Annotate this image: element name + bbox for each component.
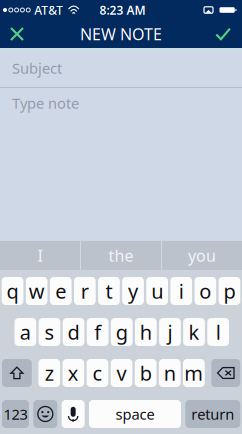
staticText: the: [108, 245, 133, 266]
staticText: NEW NOTE: [80, 23, 162, 45]
button[interactable]: g: [111, 318, 133, 346]
button[interactable]: c: [87, 359, 108, 387]
button[interactable]: k: [183, 318, 205, 346]
staticText: a: [20, 319, 31, 345]
button[interactable]: a: [14, 318, 36, 346]
button[interactable]: Shift: [2, 359, 32, 387]
staticText: n: [164, 360, 176, 386]
button[interactable]: the: [81, 241, 161, 270]
button[interactable]: t: [98, 277, 120, 305]
staticText: x: [68, 360, 79, 386]
button[interactable]: r: [74, 277, 96, 305]
staticText: c: [92, 360, 102, 386]
button[interactable]: m: [183, 359, 205, 387]
staticText: w: [29, 278, 45, 304]
staticText: r: [81, 278, 89, 304]
button[interactable]: e: [50, 277, 72, 305]
button[interactable]: p: [219, 277, 240, 305]
staticText: l: [216, 319, 221, 345]
button[interactable]: o: [194, 277, 216, 305]
button[interactable]: h: [135, 318, 157, 346]
staticText: b: [140, 360, 152, 386]
button[interactable]: q: [2, 277, 23, 305]
button[interactable]: l: [207, 318, 229, 346]
staticText: p: [223, 278, 235, 304]
button[interactable]: n: [159, 359, 181, 387]
staticText: f: [94, 319, 101, 345]
button[interactable]: i: [170, 277, 192, 305]
staticText: q: [7, 278, 19, 304]
staticText: k: [189, 319, 200, 345]
staticText: o: [199, 278, 211, 304]
button[interactable]: return: [185, 400, 240, 428]
staticText: you: [188, 245, 216, 266]
staticText: 123: [3, 404, 27, 424]
staticText: s: [44, 319, 54, 345]
staticText: y: [128, 278, 138, 304]
staticText: space: [115, 404, 154, 424]
button[interactable]: j: [159, 318, 181, 346]
button[interactable]: 123: [2, 400, 29, 428]
staticText: t: [105, 278, 112, 304]
button[interactable]: s: [39, 318, 60, 346]
staticText: h: [140, 319, 152, 345]
staticText: m: [184, 360, 203, 386]
button[interactable]: d: [63, 318, 84, 346]
button[interactable]: z: [38, 359, 60, 387]
button[interactable]: w: [26, 277, 47, 305]
staticText: 8:23 AM: [99, 2, 145, 18]
staticText: j: [167, 319, 172, 345]
staticText: AT&T: [34, 2, 63, 18]
button[interactable]: x: [62, 359, 84, 387]
staticText: I: [37, 245, 42, 266]
staticText: z: [45, 360, 54, 386]
button[interactable]: f: [87, 318, 108, 346]
button[interactable]: Cancel: [0, 20, 34, 48]
staticText: Type note: [12, 93, 79, 113]
button[interactable]: y: [122, 277, 144, 305]
staticText: Subject: [12, 58, 62, 78]
staticText: v: [117, 360, 127, 386]
staticText: u: [151, 278, 163, 304]
button[interactable]: Save: [205, 20, 241, 48]
staticText: g: [116, 319, 128, 345]
staticText: i: [179, 278, 184, 304]
button[interactable]: Delete: [211, 359, 240, 387]
button[interactable]: u: [146, 277, 168, 305]
button[interactable]: Emoji: [33, 400, 57, 428]
button[interactable]: b: [135, 359, 156, 387]
button[interactable]: space: [89, 400, 181, 428]
button[interactable]: Dictation: [62, 400, 85, 428]
staticText: d: [68, 319, 80, 345]
staticText: e: [55, 278, 66, 304]
staticText: return: [191, 404, 234, 424]
button[interactable]: v: [111, 359, 132, 387]
button[interactable]: you: [162, 241, 242, 270]
button[interactable]: I: [0, 241, 80, 270]
